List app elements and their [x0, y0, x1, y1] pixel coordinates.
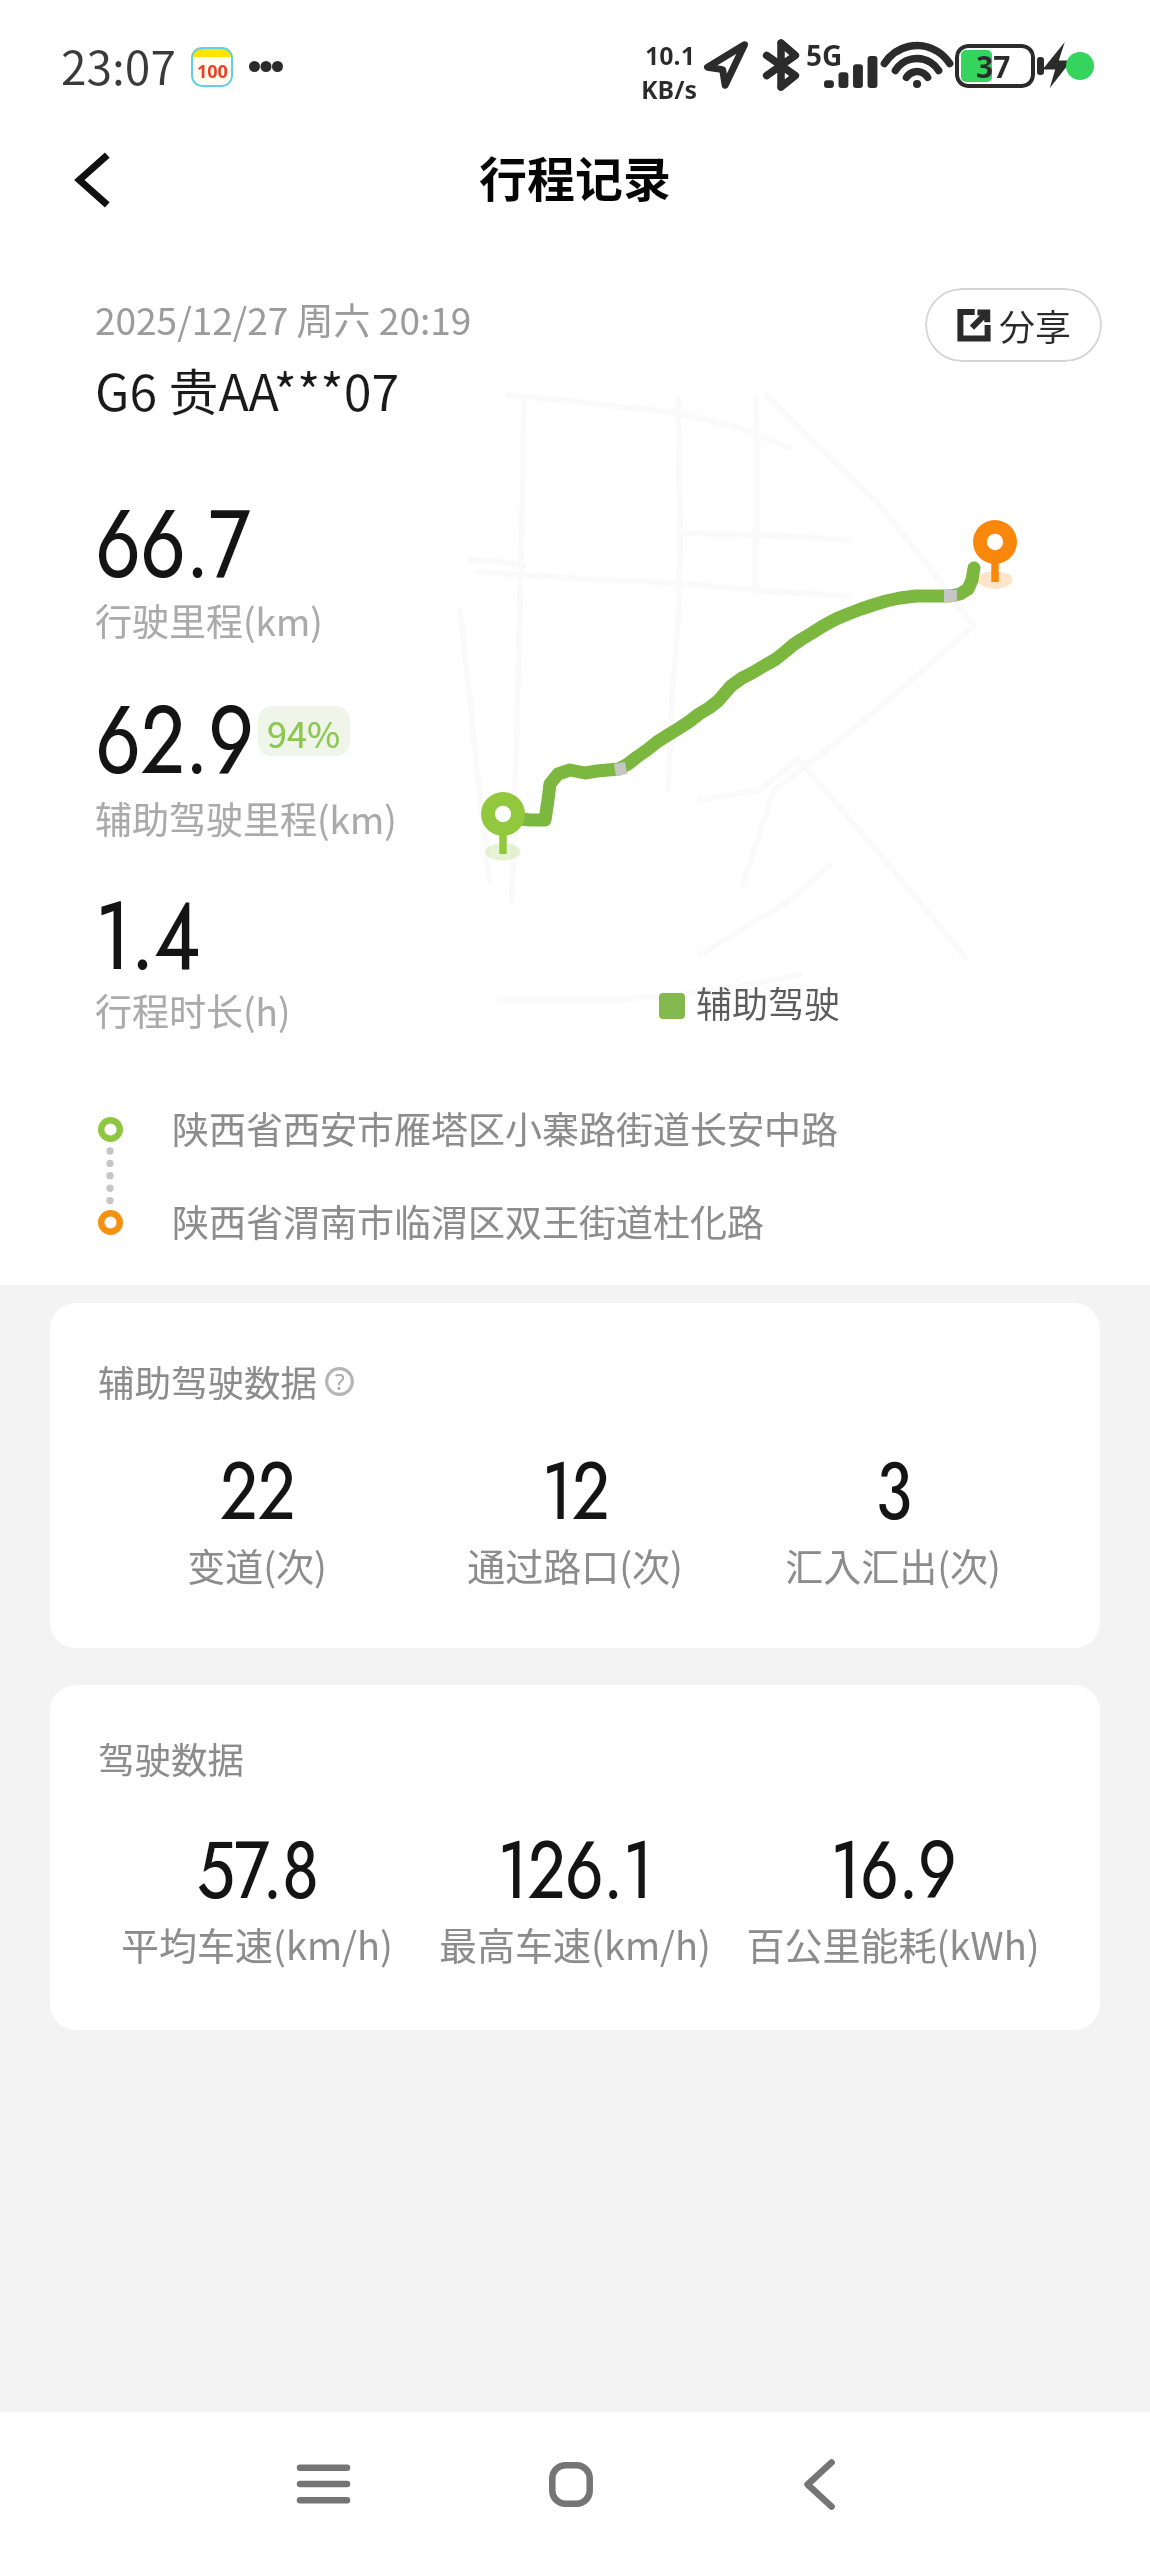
staticText: 126.1: [499, 1811, 653, 1928]
staticText: 辅助驾驶: [696, 976, 841, 1028]
staticText: 94%: [267, 706, 341, 756]
staticText: 66.7: [95, 474, 250, 613]
staticText: 最高车速(km/h): [439, 1916, 711, 1971]
staticText: 驾驶数据: [98, 1732, 244, 1785]
staticText: 通过路口(次): [467, 1537, 683, 1592]
staticText: 1.4: [95, 866, 199, 1005]
button[interactable]: 辅助驾驶数据: [50, 1303, 1100, 1648]
staticText: 辅助驾驶里程(km): [95, 791, 397, 845]
staticText: 平均车速(km/h): [121, 1916, 393, 1971]
staticText: 100: [197, 59, 228, 84]
staticText: 62.9: [95, 670, 254, 809]
staticText: 3: [875, 1432, 912, 1549]
button[interactable]: Home: [511, 2424, 631, 2544]
staticText: 变道(次): [187, 1537, 327, 1592]
staticText: 辅助驾驶数据: [98, 1355, 317, 1408]
button[interactable]: Back: [45, 132, 141, 228]
staticText: 3: [876, 1432, 913, 1549]
staticText: 行程时长(h): [95, 983, 291, 1037]
staticText: 57.8: [198, 1811, 319, 1928]
staticText: 行驶里程(km): [95, 593, 323, 647]
staticText: 5G: [806, 36, 843, 74]
button[interactable]: 驾驶数据: [50, 1685, 1100, 2030]
staticText: 16.9: [831, 1811, 958, 1928]
staticText: 12: [543, 1432, 610, 1549]
staticText: KB/s: [641, 72, 698, 106]
staticText: 10.1: [645, 38, 695, 72]
staticText: 2025/12/27 周六 20:19: [95, 292, 472, 346]
staticText: 陕西省渭南市临渭区双王街道杜化路: [172, 1194, 764, 1248]
staticText: 66.7: [96, 474, 251, 613]
staticText: 57.8: [197, 1811, 318, 1928]
staticText: 陕西省西安市雁塔区小寨路街道长安中路: [172, 1101, 838, 1155]
staticText: G6 贵AA***07: [95, 353, 400, 425]
staticText: 23:07: [61, 32, 176, 99]
staticText: 行程记录: [479, 141, 672, 211]
staticText: 37: [976, 46, 1011, 87]
button[interactable]: 分享: [925, 288, 1102, 362]
staticText: ?: [335, 1366, 345, 1395]
staticText: 分享: [999, 299, 1072, 351]
staticText: 16.9: [830, 1811, 957, 1928]
staticText: 22: [220, 1432, 295, 1549]
button[interactable]: Recent apps: [263, 2424, 383, 2544]
staticText: 百公里能耗(kWh): [746, 1916, 1040, 1971]
button[interactable]: Back: [759, 2424, 879, 2544]
staticText: 22: [221, 1432, 296, 1549]
staticText: 62.9: [96, 670, 255, 809]
staticText: 汇入汇出(次): [785, 1537, 1001, 1592]
staticText: 1.4: [96, 866, 200, 1005]
staticText: 126.1: [498, 1811, 652, 1928]
staticText: 12: [542, 1432, 609, 1549]
